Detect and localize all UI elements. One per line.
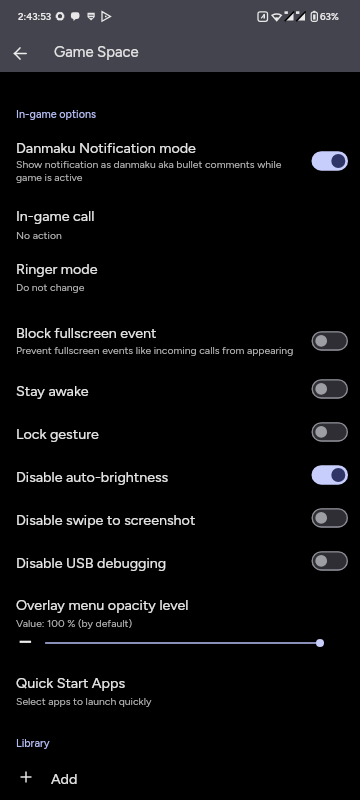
staticText: No action <box>16 229 62 241</box>
staticText: Select apps to launch quickly <box>16 695 152 707</box>
staticText: In-game options <box>16 108 97 121</box>
staticText: Do not change <box>16 281 85 293</box>
staticText: Block fullscreen event <box>16 324 157 341</box>
staticText: Ringer mode <box>16 260 98 277</box>
staticText: 63% <box>320 11 339 23</box>
button[interactable]: Back <box>5 38 36 69</box>
staticText: Stay awake <box>16 382 89 399</box>
staticText: 2:43:53 <box>18 11 52 23</box>
button[interactable]: Disabled <box>304 546 354 576</box>
staticText: Show notification as danmaku aka bullet … <box>16 158 282 184</box>
staticText: Danmaku Notification mode <box>16 139 196 156</box>
button[interactable] <box>0 414 360 452</box>
staticText: Disable swipe to screenshot <box>16 511 196 528</box>
button[interactable]: Enabled <box>304 460 354 490</box>
button[interactable] <box>0 669 360 713</box>
button[interactable] <box>0 131 360 187</box>
button[interactable] <box>0 760 360 800</box>
button[interactable] <box>0 500 360 538</box>
staticText: Quick Start Apps <box>16 674 126 691</box>
button[interactable] <box>0 543 360 581</box>
staticText: Disable USB debugging <box>16 554 167 571</box>
staticText: Overlay menu opacity level <box>16 596 189 613</box>
button[interactable] <box>0 251 360 295</box>
button[interactable] <box>0 457 360 495</box>
staticText: Add <box>51 770 78 787</box>
button[interactable]: Enabled <box>304 146 354 176</box>
button[interactable]: Disabled <box>304 417 354 447</box>
staticText: Lock gesture <box>16 425 99 442</box>
staticText: Library <box>16 737 50 750</box>
button[interactable] <box>0 197 360 241</box>
staticText: Prevent fullscreen events like incoming … <box>16 344 294 356</box>
button[interactable]: Disabled <box>304 374 354 404</box>
button[interactable] <box>0 316 360 360</box>
staticText: Game Space <box>54 43 139 61</box>
staticText: Disable auto-brightness <box>16 468 169 485</box>
button[interactable]: Disabled <box>304 326 354 356</box>
button[interactable]: Disabled <box>304 503 354 533</box>
button[interactable] <box>0 371 360 409</box>
staticText: Value: 100 % (by default) <box>16 617 133 629</box>
staticText: In-game call <box>16 207 95 224</box>
